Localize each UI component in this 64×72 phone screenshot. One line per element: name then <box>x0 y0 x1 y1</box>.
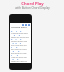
staticText: but now am found <box>11 48 27 50</box>
staticText: was blind but now <box>11 52 27 54</box>
staticText: Chord Play <box>21 1 44 7</box>
staticText: G C G <box>11 30 22 32</box>
staticText: Amazing Grace <box>11 26 27 29</box>
staticText: Amazing grace how <box>11 32 28 34</box>
staticText: D G <box>11 50 20 52</box>
staticText: I see my grace has <box>11 56 27 58</box>
staticText: saved a wretch like <box>11 40 27 42</box>
staticText: G D G <box>11 42 21 44</box>
staticText: taught my heart to <box>11 60 27 62</box>
staticText: D G <box>11 58 19 60</box>
staticText: with Button Chord Display <box>15 6 50 10</box>
staticText: G D <box>11 34 21 36</box>
staticText: me I once was lost <box>11 44 27 46</box>
staticText: sweet the sound that <box>11 36 29 38</box>
staticText: G C G <box>11 38 22 40</box>
staticText: C G <box>11 54 19 56</box>
staticText: C G <box>11 46 18 48</box>
